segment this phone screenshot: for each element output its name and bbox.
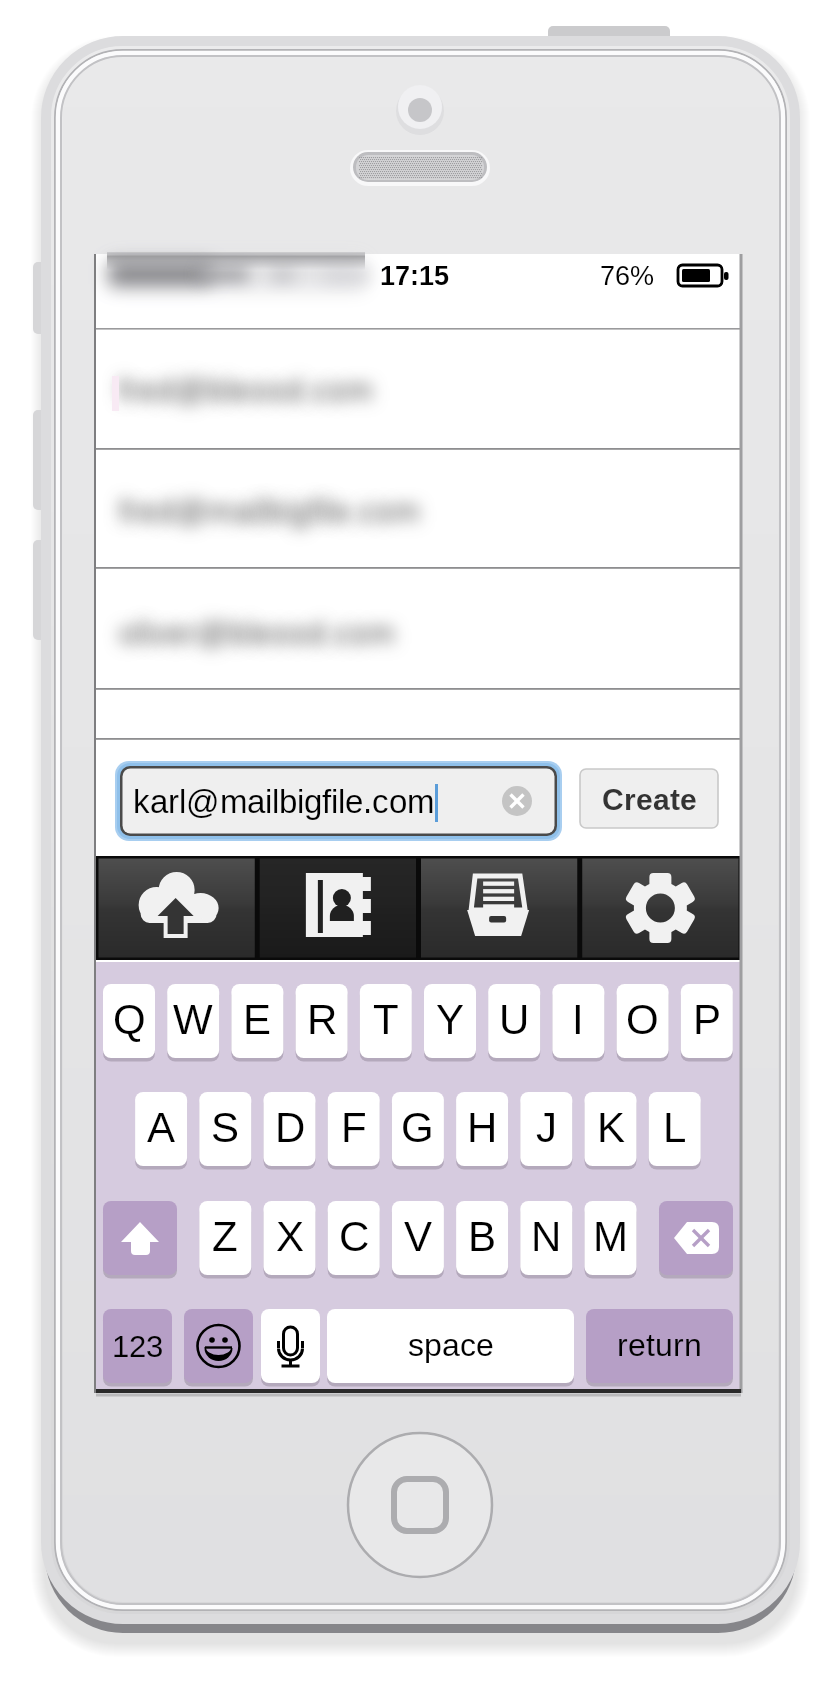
button[interactable]: O <box>617 984 669 1058</box>
button[interactable]: Backspace <box>659 1201 733 1275</box>
button[interactable]: Clear text <box>500 784 534 818</box>
button[interactable]: Files <box>419 856 580 960</box>
button[interactable]: Create <box>580 769 718 828</box>
button[interactable]: J <box>520 1092 572 1166</box>
button[interactable]: K <box>585 1092 637 1166</box>
button[interactable]: G <box>392 1092 444 1166</box>
button[interactable]: Home <box>348 1433 492 1577</box>
button[interactable]: W <box>167 984 219 1058</box>
button[interactable]: M <box>585 1201 637 1275</box>
button[interactable]: space <box>327 1309 574 1383</box>
button[interactable]: I <box>552 984 604 1058</box>
button[interactable]: Shift <box>103 1201 177 1275</box>
button[interactable]: B <box>456 1201 508 1275</box>
button[interactable]: A <box>135 1092 187 1166</box>
button[interactable]: Contact fred@bleood.com <box>96 329 741 449</box>
button[interactable]: N <box>520 1201 572 1275</box>
button[interactable]: Upload <box>96 856 257 960</box>
button[interactable]: Contact oliver@bleood.com <box>96 568 741 683</box>
button[interactable]: T <box>360 984 412 1058</box>
button[interactable]: Settings <box>580 856 741 960</box>
button[interactable]: L <box>649 1092 701 1166</box>
button[interactable]: Contacts <box>257 856 418 960</box>
button[interactable]: Email address field <box>115 762 560 840</box>
button[interactable]: Z <box>199 1201 251 1275</box>
button[interactable]: S <box>199 1092 251 1166</box>
button[interactable]: H <box>456 1092 508 1166</box>
button[interactable]: D <box>264 1092 316 1166</box>
button[interactable]: Q <box>103 984 155 1058</box>
button[interactable]: 123 numbers <box>103 1309 172 1383</box>
button[interactable]: V <box>392 1201 444 1275</box>
button[interactable]: F <box>328 1092 380 1166</box>
button[interactable]: X <box>264 1201 316 1275</box>
button[interactable]: P <box>681 984 733 1058</box>
button[interactable]: Emoji <box>184 1309 253 1383</box>
button[interactable]: return <box>586 1309 733 1383</box>
button[interactable]: U <box>488 984 540 1058</box>
button[interactable]: E <box>231 984 283 1058</box>
button[interactable]: Contact fred@mailbigfile.com <box>96 450 741 567</box>
button[interactable]: R <box>296 984 348 1058</box>
button[interactable]: Y <box>424 984 476 1058</box>
button[interactable]: C <box>328 1201 380 1275</box>
button[interactable]: Dictation <box>261 1309 320 1383</box>
